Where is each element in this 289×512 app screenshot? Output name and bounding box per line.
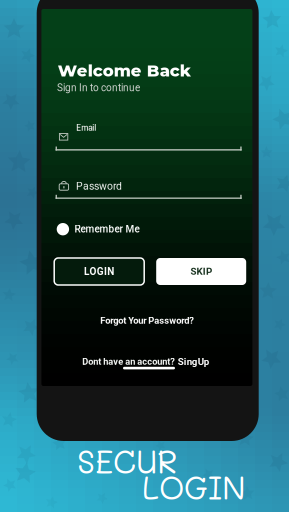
staticText: SKIP: [190, 266, 212, 277]
button[interactable]: Forgot Your Password?: [100, 315, 194, 326]
staticText: Dont have an account?: [82, 356, 175, 367]
staticText: Password: [76, 180, 122, 192]
staticText: LOGIN: [142, 466, 246, 508]
button[interactable]: Remember Me: [57, 223, 140, 235]
staticText: Remember Me: [75, 223, 140, 235]
staticText: LOGIN: [84, 266, 114, 277]
staticText: SingUp: [178, 356, 209, 367]
button[interactable]: LOGIN: [54, 258, 144, 285]
button[interactable]: SingUp: [178, 356, 209, 367]
staticText: SECUR: [77, 440, 178, 482]
staticText: Email: [76, 123, 96, 133]
staticText: Sign In to continue: [57, 82, 140, 94]
staticText: Forgot Your Password?: [100, 315, 194, 326]
staticText: Welcome Back: [58, 60, 191, 80]
button[interactable]: SKIP: [156, 258, 246, 285]
